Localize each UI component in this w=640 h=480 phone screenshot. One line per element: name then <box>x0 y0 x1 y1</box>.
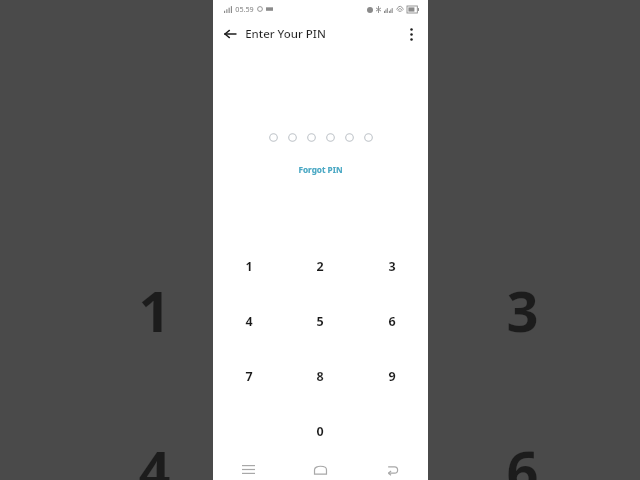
button[interactable]: 5 <box>284 294 356 349</box>
staticText: 1 <box>245 258 253 275</box>
staticText: 6 <box>506 432 539 480</box>
button[interactable]: 0 <box>284 404 356 459</box>
button[interactable]: 1 <box>213 239 284 294</box>
button[interactable]: More options <box>401 24 421 44</box>
staticText: 4 <box>245 313 253 330</box>
button[interactable]: Back <box>220 24 240 44</box>
staticText: 8 <box>316 368 324 385</box>
staticText: 6 <box>388 313 396 330</box>
button[interactable]: Recent apps <box>213 459 284 480</box>
button[interactable]: 6 <box>356 294 428 349</box>
button[interactable]: Back <box>356 459 428 480</box>
staticText: 05.59 <box>235 4 254 14</box>
staticText: Forgot PIN <box>298 164 343 175</box>
staticText: 3 <box>506 272 539 348</box>
staticText: Enter Your PIN <box>245 26 326 42</box>
staticText: 4 <box>138 432 171 480</box>
button[interactable]: Forgot PIN <box>213 164 428 175</box>
staticText: 1 <box>138 272 171 348</box>
button[interactable]: 9 <box>356 349 428 404</box>
staticText: 3 <box>388 258 396 275</box>
button[interactable]: 7 <box>213 349 284 404</box>
button[interactable]: 3 <box>356 239 428 294</box>
staticText: 2 <box>316 258 324 275</box>
staticText: 0 <box>316 423 324 440</box>
staticText: 7 <box>245 368 253 385</box>
button[interactable]: Home <box>284 459 356 480</box>
button[interactable]: 8 <box>284 349 356 404</box>
staticText: 9 <box>388 368 396 385</box>
staticText: 5 <box>316 313 324 330</box>
button[interactable]: 2 <box>284 239 356 294</box>
button[interactable]: 4 <box>213 294 284 349</box>
